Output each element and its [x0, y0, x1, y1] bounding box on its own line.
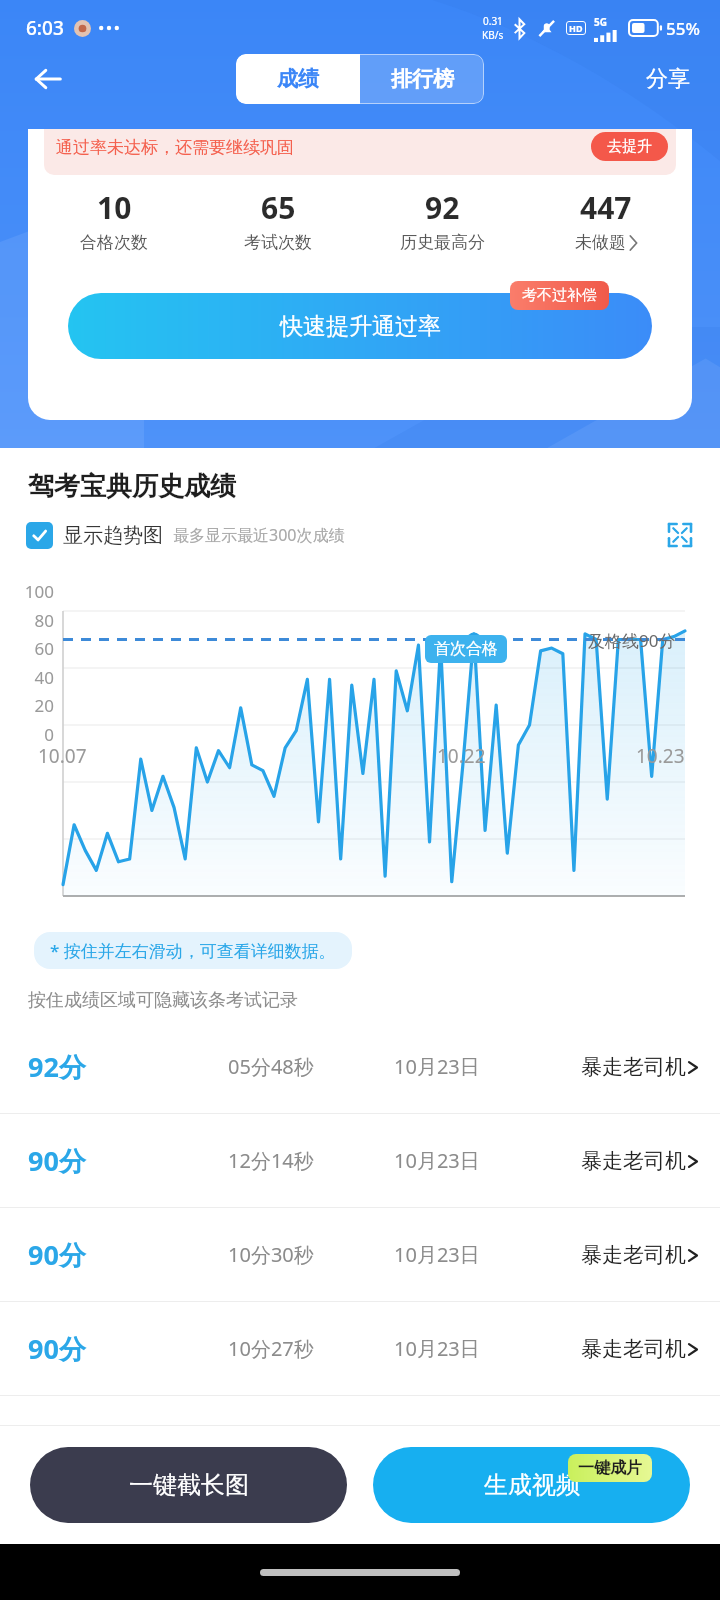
staticText: 6:03: [26, 15, 64, 41]
button[interactable]: 65: [196, 187, 360, 253]
staticText: 历史最高分: [400, 232, 485, 253]
staticText: 20: [14, 694, 54, 717]
staticText: 80: [14, 609, 54, 632]
staticText: 90分: [28, 1330, 86, 1367]
staticText: 55%: [666, 17, 700, 40]
staticText: 排行榜: [391, 66, 454, 92]
button[interactable]: 成绩: [236, 54, 360, 104]
button[interactable]: 90分: [0, 1302, 720, 1395]
staticText: 0.31: [483, 14, 503, 28]
staticText: 10月23日: [394, 1335, 480, 1362]
button[interactable]: 447: [524, 187, 688, 253]
staticText: 暴走老司机: [581, 1336, 686, 1362]
staticText: 暴走老司机: [581, 1242, 686, 1268]
staticText: 合格次数: [80, 232, 148, 253]
staticText: 65: [261, 187, 296, 228]
button[interactable]: Back: [24, 55, 72, 103]
button[interactable]: 一键截长图: [30, 1447, 347, 1523]
staticText: 10.23: [636, 743, 685, 769]
staticText: 90分: [28, 1236, 86, 1273]
button[interactable]: 分享: [638, 57, 698, 101]
staticText: 未做题: [575, 232, 626, 253]
staticText: 12分14秒: [228, 1147, 314, 1174]
staticText: 按住成绩区域可隐藏该条考试记录: [28, 989, 298, 1012]
staticText: 10.07: [38, 743, 87, 769]
staticText: 显示趋势图: [63, 523, 163, 548]
button[interactable]: 显示趋势图: [26, 522, 163, 549]
staticText: 考不过补偿: [522, 286, 597, 305]
staticText: 90分: [28, 1142, 86, 1179]
staticText: 暴走老司机: [581, 1054, 686, 1080]
staticText: 成绩: [277, 66, 319, 92]
button[interactable]: Fullscreen: [660, 515, 700, 555]
button[interactable]: 生成视频: [373, 1447, 690, 1523]
button[interactable]: 通过率未达标，还需要继续巩固: [44, 129, 676, 175]
button[interactable]: 排行榜: [360, 54, 484, 104]
staticText: 考试次数: [244, 232, 312, 253]
staticText: 去提升: [607, 137, 652, 156]
staticText: 一键成片: [578, 1458, 642, 1478]
staticText: 首次合格: [434, 639, 498, 659]
staticText: 447: [580, 187, 632, 228]
staticText: 10分27秒: [228, 1335, 314, 1362]
staticText: 及格线90分: [588, 629, 676, 652]
staticText: 10: [97, 187, 132, 228]
staticText: HD: [569, 22, 583, 34]
staticText: 生成视频: [484, 1470, 580, 1500]
staticText: * 按住并左右滑动，可查看详细数据。: [50, 939, 336, 962]
staticText: 10月23日: [394, 1147, 480, 1174]
staticText: 5G: [594, 15, 607, 29]
staticText: 快速提升通过率: [280, 312, 441, 341]
button[interactable]: 92分: [0, 1020, 720, 1113]
staticText: 100: [14, 580, 54, 603]
staticText: 最多显示最近300次成绩: [173, 524, 345, 546]
staticText: 暴走老司机: [581, 1148, 686, 1174]
button[interactable]: 90分: [0, 1114, 720, 1207]
staticText: 40: [14, 666, 54, 689]
staticText: 10月23日: [394, 1053, 480, 1080]
staticText: 10.22: [437, 743, 486, 769]
staticText: 分享: [646, 65, 690, 93]
button[interactable]: 快速提升通过率: [68, 293, 652, 359]
button[interactable]: 去提升: [591, 132, 668, 161]
staticText: 05分48秒: [228, 1053, 314, 1080]
staticText: 10分30秒: [228, 1241, 314, 1268]
button[interactable]: 90分: [0, 1208, 720, 1301]
staticText: 10月23日: [394, 1241, 480, 1268]
staticText: 通过率未达标，还需要继续巩固: [56, 137, 294, 158]
staticText: 92: [425, 187, 460, 228]
staticText: 驾考宝典历史成绩: [28, 470, 236, 503]
staticText: 60: [14, 637, 54, 660]
staticText: 92分: [28, 1048, 86, 1085]
staticText: 0: [14, 723, 54, 746]
staticText: KB/s: [482, 28, 504, 42]
staticText: 一键截长图: [129, 1470, 249, 1500]
button[interactable]: 10: [32, 187, 196, 253]
button[interactable]: 92: [360, 187, 524, 253]
